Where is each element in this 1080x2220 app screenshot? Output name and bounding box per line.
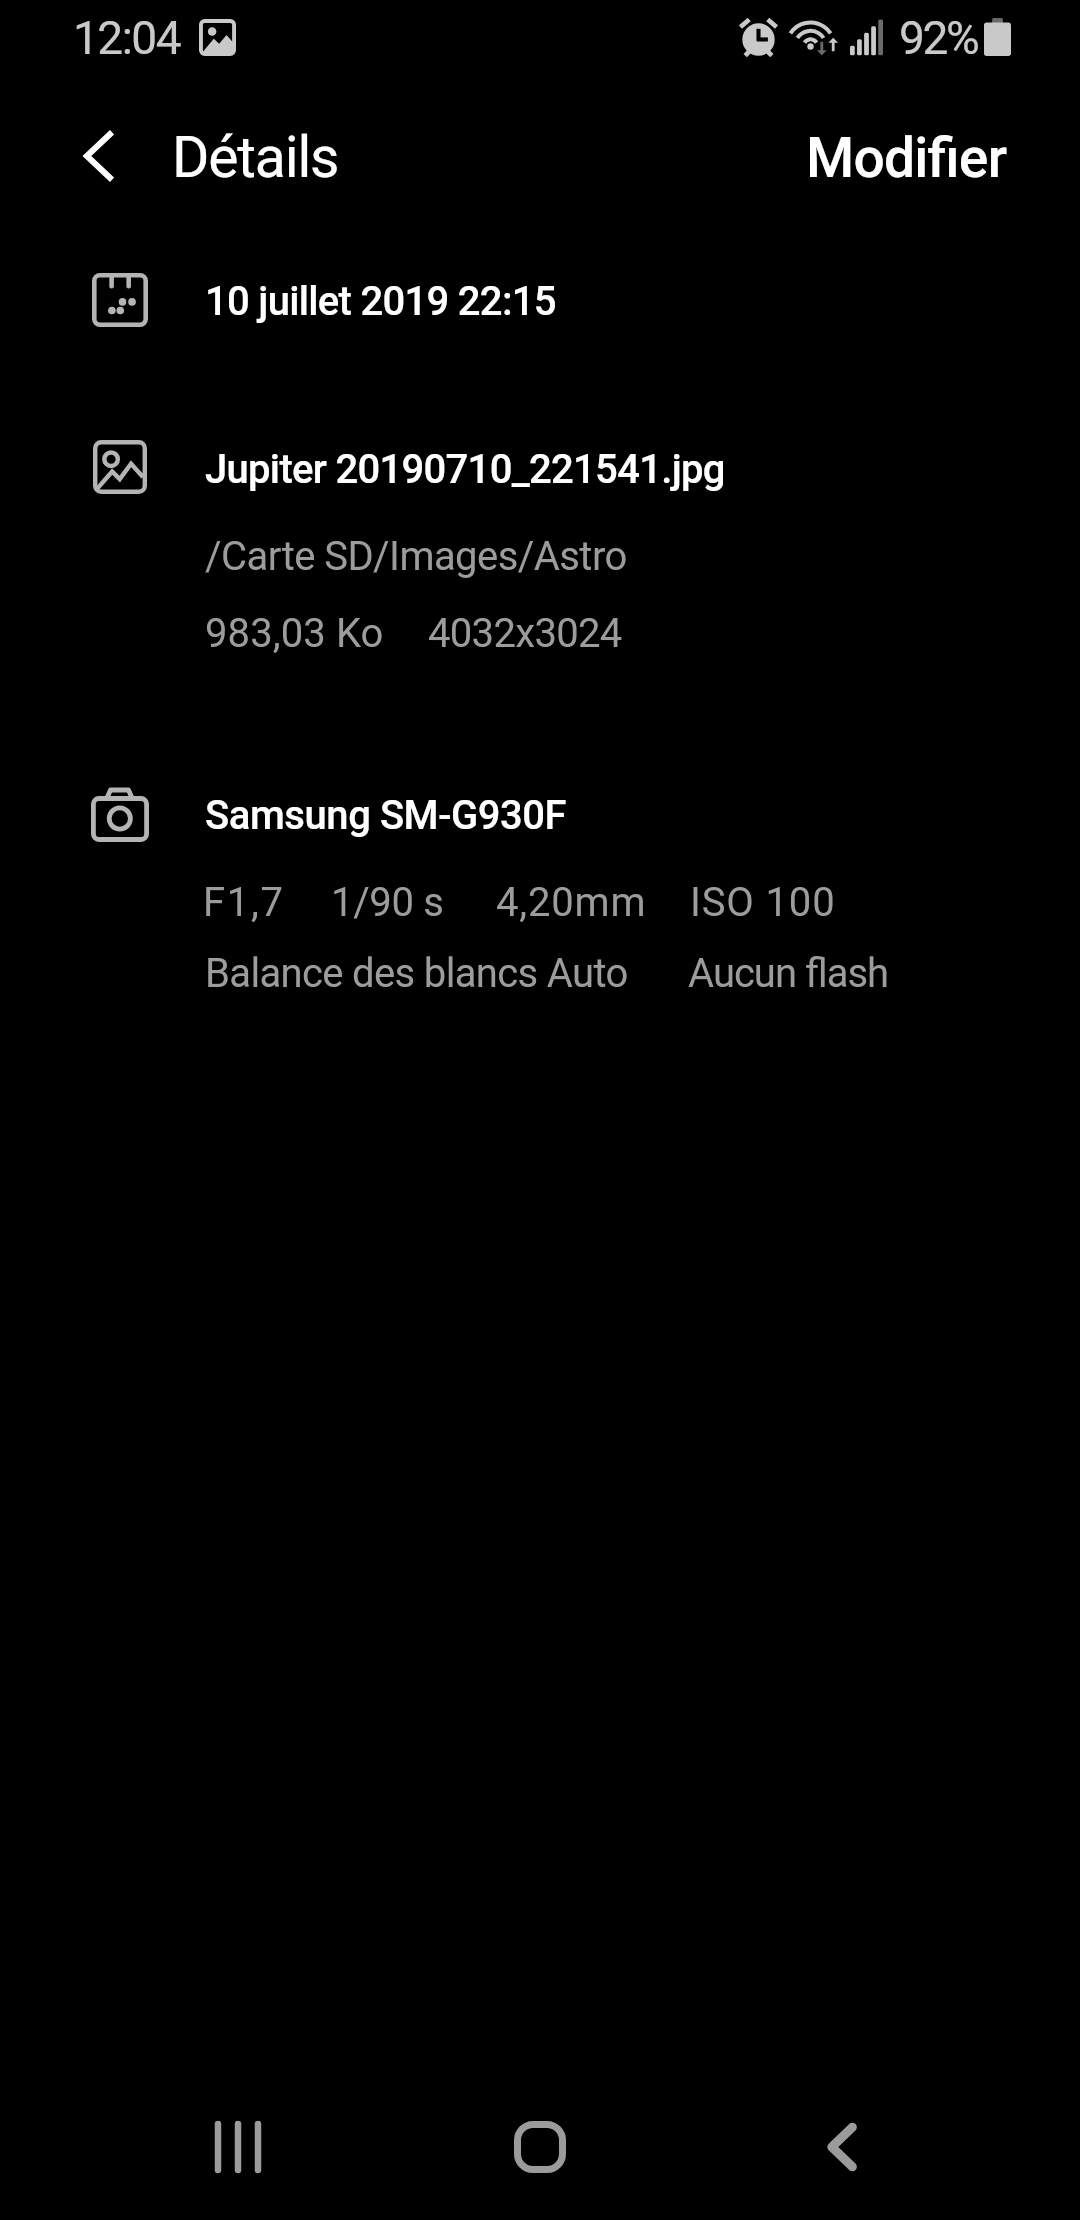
button[interactable]: Back: [753, 2057, 933, 2220]
button[interactable]: 10 juillet 2019 22:15: [60, 252, 1020, 352]
button[interactable]: Samsung SM-G930F: [60, 772, 1020, 1017]
button[interactable]: Détails: [160, 96, 600, 216]
button[interactable]: Jupiter 20190710_221541.jpg: [60, 425, 1020, 670]
staticText: Modifier: [806, 126, 1007, 190]
staticText: Aucun flash: [688, 950, 889, 997]
staticText: 92%: [899, 11, 978, 65]
button[interactable]: Home: [450, 2057, 630, 2220]
staticText: 4032x3024: [428, 610, 622, 657]
staticText: Balance des blancs Auto: [205, 950, 628, 997]
button[interactable]: Modifier: [760, 96, 1050, 216]
staticText: Détails: [172, 124, 339, 191]
staticText: F1,7: [203, 879, 285, 926]
staticText: 1/90 s: [331, 879, 444, 926]
staticText: 10 juillet 2019 22:15: [205, 278, 556, 325]
staticText: /Carte SD/Images/Astro: [205, 533, 627, 580]
staticText: 4,20mm: [496, 879, 647, 926]
staticText: 983,03 Ko: [205, 610, 384, 657]
staticText: ISO 100: [690, 879, 836, 926]
button[interactable]: Back: [40, 96, 160, 216]
button[interactable]: Recent apps: [148, 2057, 328, 2220]
staticText: Samsung SM-G930F: [205, 792, 567, 839]
staticText: 12:04: [73, 11, 181, 65]
staticText: Jupiter 20190710_221541.jpg: [205, 446, 725, 493]
